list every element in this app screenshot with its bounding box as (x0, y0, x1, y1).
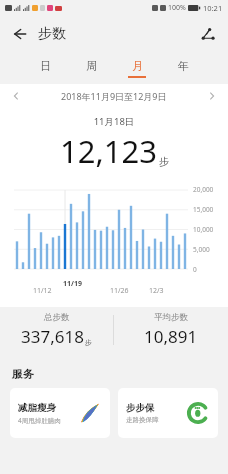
staticText: 10:21 (203, 3, 223, 13)
staticText: 337,618 (21, 325, 84, 348)
staticText: 10,000 (193, 225, 214, 234)
button[interactable]: 减脂瘦身 (10, 388, 110, 438)
staticText: 服务 (12, 367, 34, 381)
button[interactable]: 平均步数 (114, 307, 228, 353)
staticText: 走路换保障 (126, 416, 159, 424)
staticText: 100% (168, 3, 186, 13)
staticText: 10,891 (144, 325, 198, 348)
button[interactable]: 总步数 (0, 307, 113, 353)
staticText: 减脂瘦身 (18, 402, 56, 414)
staticText: 平均步数 (154, 312, 188, 323)
button[interactable]: 步步保 (118, 388, 218, 438)
button[interactable]: 周 (74, 52, 108, 84)
button[interactable]: Back (6, 21, 32, 47)
staticText: 周 (86, 59, 97, 73)
staticText: 步步保 (126, 402, 155, 414)
button[interactable]: 月 (120, 52, 154, 84)
staticText: 步 (159, 155, 169, 168)
staticText: 12/3 (149, 286, 164, 296)
staticText: 步 (85, 338, 92, 347)
staticText: 15,000 (193, 205, 214, 214)
button[interactable]: 年 (166, 52, 200, 84)
button[interactable]: Share (195, 21, 221, 47)
staticText: 0 (193, 265, 197, 274)
staticText: 日 (40, 59, 51, 73)
staticText: 年 (178, 59, 189, 73)
staticText: 总步数 (44, 312, 70, 323)
staticText: 2018年11月9日至12月9日 (61, 90, 167, 102)
staticText: 12,123 (60, 130, 157, 172)
button[interactable]: 日 (28, 52, 62, 84)
staticText: 月 (132, 59, 143, 73)
staticText: 5,000 (193, 245, 210, 254)
staticText: 11/19 (63, 279, 82, 289)
button[interactable]: Next period (202, 86, 222, 106)
button[interactable]: Previous period (6, 86, 26, 106)
staticText: 11月18日 (0, 115, 228, 128)
staticText: 4周甩掉肚腩肉 (18, 416, 61, 425)
staticText: 11/26 (110, 286, 129, 296)
staticText: 步数 (38, 25, 66, 43)
staticText: 20,000 (193, 185, 214, 194)
staticText: 11/12 (33, 286, 52, 296)
